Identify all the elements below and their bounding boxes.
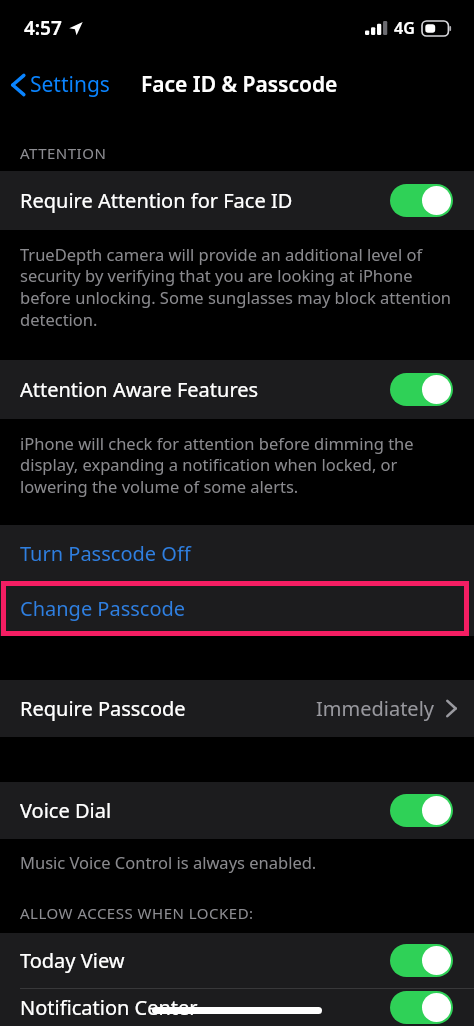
staticText: Attention Aware Features [20,376,390,403]
staticText: Face ID & Passcode [141,70,338,99]
staticText: Music Voice Control is always enabled. [20,851,458,873]
button[interactable]: Attention Aware Features [0,360,474,419]
staticText: Today View [20,947,390,974]
button[interactable]: Toggle on [390,991,453,1024]
staticText: Require Passcode [20,695,316,722]
button[interactable]: Toggle on [390,794,453,827]
staticText: Settings [30,70,110,99]
button[interactable]: Require Passcode [0,680,474,737]
staticText: Change Passcode [20,595,186,622]
button[interactable]: Voice Dial [0,782,474,839]
button[interactable]: Turn Passcode Off [0,525,474,581]
button[interactable]: Toggle on [390,373,453,406]
staticText: 4:57 [24,15,62,41]
button[interactable]: Today View [0,933,474,988]
button[interactable]: Settings [0,64,118,105]
button[interactable]: Notification Center [0,989,474,1026]
staticText: ALLOW ACCESS WHEN LOCKED: [20,903,474,923]
staticText: Notification Center [20,994,390,1021]
staticText: Voice Dial [20,797,390,824]
button[interactable]: Toggle on [390,944,453,977]
button[interactable]: Toggle on [390,184,453,217]
staticText: 4G [394,17,415,39]
staticText: Immediately [316,695,434,722]
staticText: iPhone will check for attention before d… [20,432,458,498]
button[interactable]: Change Passcode [0,581,474,636]
staticText: ATTENTION [20,143,474,163]
button[interactable]: Require Attention for Face ID [0,171,474,230]
staticText: Require Attention for Face ID [20,187,390,214]
staticText: TrueDepth camera will provide an additio… [20,243,458,331]
